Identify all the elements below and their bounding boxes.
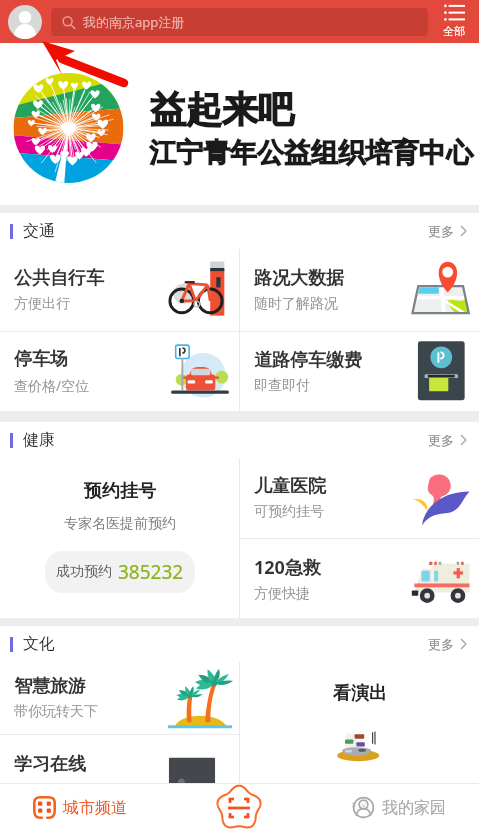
staticText: 我的家园 bbox=[382, 798, 446, 818]
staticText: 我的南京app注册 bbox=[83, 13, 185, 31]
staticText: 学习在线 bbox=[14, 753, 86, 776]
staticText: 可预约挂号 bbox=[254, 503, 324, 521]
staticText: 成功预约 bbox=[56, 563, 112, 581]
button[interactable]: 停车场 bbox=[0, 332, 239, 411]
staticText: 方便出行 bbox=[14, 295, 70, 313]
button[interactable]: 我的南京app注册 bbox=[51, 8, 428, 36]
staticText: 专家名医提前预约 bbox=[64, 515, 176, 533]
staticText: 健康 bbox=[23, 430, 55, 450]
staticText: 385232 bbox=[118, 559, 184, 585]
button[interactable]: 学习在线 bbox=[0, 735, 239, 783]
button[interactable]: 更多 bbox=[428, 626, 479, 662]
staticText: 即查即付 bbox=[254, 377, 310, 395]
button[interactable]: Scan bbox=[159, 784, 319, 831]
staticText: 路况大数据 bbox=[254, 267, 344, 290]
staticText: 更多 bbox=[428, 636, 454, 652]
button[interactable]: 全部 bbox=[428, 0, 479, 43]
staticText: 儿童医院 bbox=[254, 475, 326, 498]
button[interactable]: 路况大数据 bbox=[240, 249, 479, 331]
button[interactable]: 看演出 bbox=[240, 662, 479, 783]
staticText: 全部 bbox=[443, 24, 465, 38]
button[interactable]: 儿童医院 bbox=[240, 458, 479, 538]
staticText: 停车场 bbox=[14, 348, 68, 371]
staticText: 益起来吧 bbox=[150, 87, 294, 132]
button[interactable]: 更多 bbox=[428, 422, 479, 458]
button[interactable]: 更多 bbox=[428, 213, 479, 249]
button[interactable]: 智慧旅游 bbox=[0, 662, 239, 734]
staticText: 城市频道 bbox=[63, 798, 127, 818]
staticText: 带你玩转天下 bbox=[14, 703, 98, 721]
staticText: 公共自行车 bbox=[14, 267, 104, 290]
button[interactable]: 道路停车缴费 bbox=[240, 332, 479, 411]
button[interactable]: 我的家园 bbox=[319, 784, 479, 831]
button[interactable]: Profile bbox=[8, 5, 42, 39]
staticText: 更多 bbox=[428, 223, 454, 239]
staticText: 江宁青年公益组织培育中心 bbox=[149, 136, 473, 170]
staticText: 看演出 bbox=[333, 682, 387, 705]
staticText: 道路停车缴费 bbox=[254, 349, 362, 372]
staticText: 文化 bbox=[23, 634, 55, 654]
staticText: 方便快捷 bbox=[254, 585, 310, 603]
button[interactable]: 120急救 bbox=[240, 539, 479, 618]
staticText: 更多 bbox=[428, 432, 454, 448]
staticText: 随时了解路况 bbox=[254, 295, 338, 313]
staticText: 智慧旅游 bbox=[14, 675, 86, 698]
button[interactable]: 城市频道 bbox=[0, 784, 159, 831]
button[interactable]: 预约挂号 bbox=[0, 458, 239, 618]
staticText: 预约挂号 bbox=[84, 480, 156, 503]
button[interactable]: 公共自行车 bbox=[0, 249, 239, 331]
staticText: 查价格/空位 bbox=[14, 376, 90, 395]
staticText: 120急救 bbox=[254, 555, 321, 580]
staticText: 交通 bbox=[23, 221, 55, 241]
